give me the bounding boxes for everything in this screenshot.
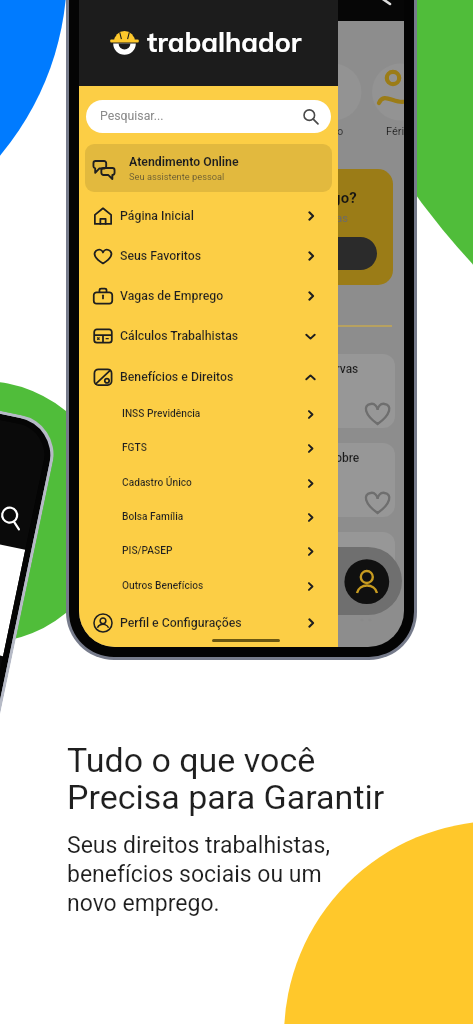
button[interactable]: Perfil e Configurações bbox=[79, 603, 338, 643]
button[interactable]: Atendimento Online bbox=[85, 144, 332, 192]
button[interactable]: Outros Benefícios bbox=[79, 569, 338, 603]
button[interactable]: Benefícios e Direitos bbox=[79, 357, 338, 397]
staticText: Perfil e Configurações bbox=[120, 616, 242, 630]
staticText: Tudo o que você Precisa para Garantir bbox=[67, 740, 385, 817]
button[interactable]: Vagas de Emprego bbox=[79, 276, 338, 316]
button[interactable]: Seus Favoritos bbox=[79, 236, 338, 276]
staticText: trabalhador bbox=[147, 25, 302, 59]
button[interactable]: Pesquisar... bbox=[86, 100, 331, 133]
staticText: Pesquisar... bbox=[100, 109, 164, 123]
staticText: Seus Favoritos bbox=[120, 249, 202, 263]
staticText: Férias bbox=[386, 125, 404, 138]
staticText: Cálculos Trabalhistas bbox=[120, 329, 239, 343]
staticText: ego? bbox=[324, 189, 357, 207]
other: Pesquisar bbox=[302, 108, 319, 125]
staticText: INSS Previdência bbox=[122, 408, 201, 420]
staticText: Vagas de Emprego bbox=[120, 289, 224, 303]
staticText: lário bbox=[322, 125, 344, 138]
button[interactable]: Página Inicial bbox=[79, 196, 338, 236]
staticText: adas bbox=[324, 212, 348, 225]
button[interactable]: Cadastro Único bbox=[79, 466, 338, 500]
staticText: Página Inicial bbox=[120, 209, 194, 223]
staticText: sobre bbox=[329, 451, 360, 465]
button[interactable]: FGTS bbox=[79, 431, 338, 465]
button[interactable]: PIS/PASEP bbox=[79, 534, 338, 568]
staticText: Cadastro Único bbox=[122, 477, 192, 489]
staticText: Atendimento Online bbox=[129, 155, 239, 169]
staticText: ervas bbox=[329, 362, 359, 376]
staticText: Benefícios e Direitos bbox=[120, 370, 234, 384]
button[interactable]: Cálculos Trabalhistas bbox=[79, 316, 338, 356]
button[interactable]: Bolsa Família bbox=[79, 500, 338, 534]
staticText: FGTS bbox=[122, 442, 147, 454]
button[interactable]: INSS Previdência bbox=[79, 397, 338, 431]
staticText: Seu assistente pessoal bbox=[129, 171, 225, 182]
staticText: PIS/PASEP bbox=[122, 545, 173, 557]
staticText: Bolsa Família bbox=[122, 511, 184, 523]
staticText: Outros Benefícios bbox=[122, 580, 204, 592]
staticText: Seus direitos trabalhistas, benefícios s… bbox=[67, 832, 330, 917]
